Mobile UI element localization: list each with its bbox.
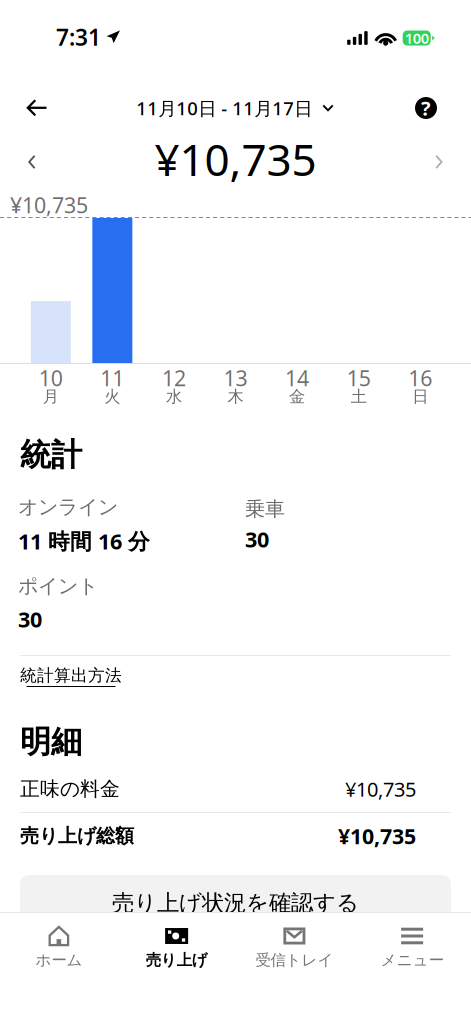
staticText: 11月10日 - 11月17日 xyxy=(136,95,312,121)
staticText: メニュー xyxy=(381,950,444,970)
staticText: 15 xyxy=(347,364,371,392)
staticText: ? xyxy=(421,95,431,121)
staticText: 受信トレイ xyxy=(255,950,333,970)
button[interactable]: Back xyxy=(14,85,60,131)
button[interactable]: 11月10日 - 11月17日 xyxy=(115,85,355,131)
staticText: ¥10,735 xyxy=(10,191,88,219)
staticText: 11 時間 16 分 xyxy=(18,526,150,556)
staticText: 売り上げ状況を確認する xyxy=(112,889,359,917)
staticText: 木 xyxy=(227,386,243,407)
staticText: ¥10,735 xyxy=(345,776,416,802)
button[interactable]: 売り上げ xyxy=(118,913,236,979)
button[interactable]: メニュー xyxy=(353,913,471,979)
staticText: 売り上げ総額 xyxy=(20,824,134,848)
staticText: 水 xyxy=(166,386,182,407)
staticText: 火 xyxy=(104,386,120,407)
staticText: 統計 xyxy=(20,435,82,474)
button[interactable]: 受信トレイ xyxy=(235,913,353,979)
button[interactable]: Help xyxy=(403,85,449,131)
staticText: 売り上げ xyxy=(146,950,208,970)
staticText: ポイント xyxy=(18,573,98,599)
button[interactable]: Previous week xyxy=(10,137,54,187)
staticText: ¥10,735 xyxy=(154,130,316,188)
staticText: ¥10,735 xyxy=(338,822,416,850)
staticText: 12 xyxy=(162,364,186,392)
staticText: 100 xyxy=(405,28,429,48)
staticText: 月 xyxy=(43,386,59,407)
button[interactable]: 売り上げ状況を確認する xyxy=(20,875,451,931)
staticText: 16 xyxy=(408,364,432,392)
staticText: 30 xyxy=(245,524,269,554)
staticText: 正味の料金 xyxy=(20,777,120,801)
staticText: 7:31 xyxy=(56,22,101,52)
staticText: 乗車 xyxy=(245,496,285,522)
staticText: ホーム xyxy=(35,950,82,970)
staticText: 11 xyxy=(100,364,124,392)
staticText: オンライン xyxy=(18,494,118,520)
staticText: 土 xyxy=(351,386,367,407)
staticText: 14 xyxy=(285,364,309,392)
staticText: 統計算出方法 xyxy=(20,665,122,686)
staticText: 明細 xyxy=(20,722,82,761)
staticText: 30 xyxy=(18,604,42,634)
button[interactable]: ホーム xyxy=(0,913,118,979)
button[interactable]: 統計算出方法 xyxy=(20,665,140,687)
staticText: 日 xyxy=(412,386,428,407)
button[interactable]: Next week xyxy=(417,137,461,187)
staticText: 13 xyxy=(223,364,247,392)
staticText: 10 xyxy=(39,364,63,392)
staticText: 金 xyxy=(289,386,305,407)
